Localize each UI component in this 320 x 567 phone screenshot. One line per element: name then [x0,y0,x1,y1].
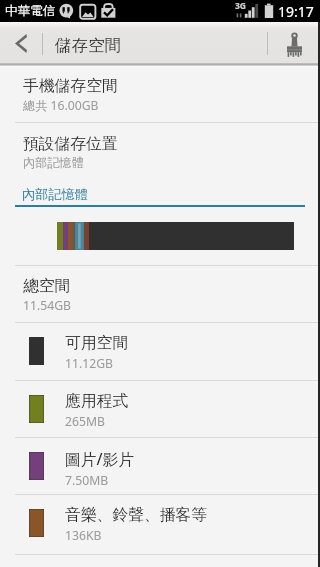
button[interactable]: Clean up storage [268,22,320,63]
button[interactable]: 總空間 [0,275,320,324]
staticText: 預設儲存位置 [23,134,118,154]
button[interactable]: 手機儲存空間 [0,75,320,124]
button[interactable]: 預設儲存位置 [0,133,320,182]
staticText: 136KB [65,527,102,544]
staticText: 內部記憶體 [22,186,88,203]
staticText: 總空間 [23,276,71,296]
staticText: 應用程式 [65,391,129,411]
staticText: 圖片/影片 [65,448,135,470]
staticText: 總共 16.00GB [23,97,99,114]
staticText: 19:17 [278,2,314,21]
staticText: 中華電信 [5,3,56,19]
button[interactable]: 音樂、鈴聲、播客等 [0,504,320,553]
button[interactable]: 可用空間 [0,332,320,381]
button[interactable]: Back [0,22,42,63]
button[interactable]: 下載 [0,564,320,567]
staticText: 11.54GB [23,297,71,314]
staticText: 7.50MB [65,472,109,489]
staticText: 內部記憶體 [23,155,84,170]
staticText: 可用空間 [65,333,129,353]
staticText: 音樂、鈴聲、播客等 [65,505,208,525]
staticText: 265MB [65,413,105,430]
staticText: 儲存空間 [55,35,121,56]
button[interactable]: 圖片/影片 [0,447,320,496]
button[interactable]: 應用程式 [0,390,320,439]
staticText: 3G [235,0,247,12]
staticText: 11.12GB [65,355,113,372]
staticText: 手機儲存空間 [23,76,118,96]
